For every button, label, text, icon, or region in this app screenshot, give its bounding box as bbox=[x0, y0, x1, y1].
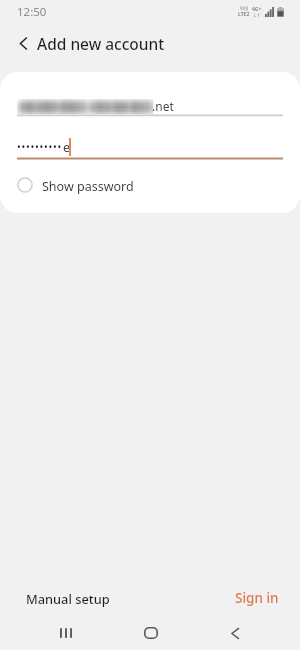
staticText: e bbox=[63, 139, 71, 156]
staticText: Sign in bbox=[235, 589, 279, 607]
button[interactable]: Show password bbox=[0, 172, 300, 200]
staticText: 4G+ bbox=[252, 6, 262, 13]
staticText: •••••••••• bbox=[17, 140, 63, 154]
staticText: Manual setup bbox=[26, 590, 110, 607]
staticText: Vo)) bbox=[240, 5, 249, 11]
button[interactable]: Manual setup bbox=[0, 584, 136, 613]
button[interactable]: Recent apps bbox=[46, 616, 86, 650]
button[interactable]: Navigate up bbox=[6, 26, 40, 60]
staticText: 12:50 bbox=[17, 4, 47, 20]
staticText: Add new account bbox=[37, 33, 165, 54]
button[interactable]: Home bbox=[131, 616, 171, 650]
staticText: LTE2 bbox=[238, 11, 250, 18]
button[interactable]: Sign in bbox=[214, 583, 300, 613]
staticText: ↓↑ bbox=[253, 13, 261, 18]
staticText: Show password bbox=[42, 178, 134, 195]
staticText: .net bbox=[152, 98, 174, 114]
button[interactable]: Back bbox=[215, 616, 255, 650]
